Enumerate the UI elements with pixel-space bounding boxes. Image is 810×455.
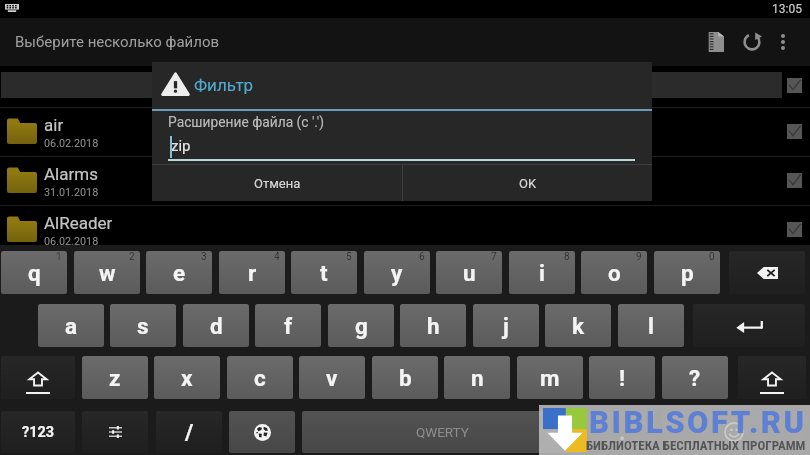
staticText: e bbox=[173, 260, 186, 286]
staticText: BIBLSOFT.RU bbox=[589, 404, 807, 440]
staticText: 06.02.2018 bbox=[44, 137, 99, 150]
staticText: x bbox=[181, 365, 193, 391]
button[interactable]: QWERTY bbox=[302, 411, 582, 453]
button[interactable]: ! bbox=[589, 356, 655, 399]
button[interactable]: 8 bbox=[509, 251, 575, 294]
staticText: 0 bbox=[709, 251, 715, 263]
staticText: Alarms bbox=[44, 164, 98, 184]
button[interactable]: 3 bbox=[146, 251, 212, 294]
staticText: zip bbox=[171, 137, 191, 155]
button[interactable]: Refresh bbox=[734, 24, 770, 60]
staticText: f bbox=[284, 313, 293, 339]
staticText: 1 bbox=[56, 251, 62, 263]
button[interactable]: 6 bbox=[364, 251, 430, 294]
button[interactable]: Android bbox=[0, 254, 810, 286]
button[interactable]: l bbox=[618, 304, 684, 347]
button[interactable]: / bbox=[156, 411, 222, 453]
button[interactable]: d bbox=[183, 304, 249, 347]
button[interactable]: b bbox=[372, 356, 438, 399]
staticText: OK bbox=[519, 176, 537, 191]
button[interactable]: v bbox=[299, 356, 365, 399]
button[interactable]: z bbox=[82, 356, 148, 399]
button[interactable]: Emoji bbox=[662, 411, 805, 453]
button[interactable]: a bbox=[38, 304, 104, 347]
button[interactable]: Отмена bbox=[152, 165, 402, 201]
staticText: v bbox=[326, 365, 338, 391]
staticText: o bbox=[608, 260, 621, 286]
staticText: a bbox=[65, 313, 78, 339]
staticText: 8 bbox=[564, 251, 570, 263]
staticText: u bbox=[463, 260, 476, 286]
button[interactable]: Shift bbox=[738, 356, 806, 399]
staticText: 06.02.2018 bbox=[44, 235, 99, 248]
button[interactable]: 2 bbox=[74, 251, 140, 294]
staticText: 13:05 bbox=[772, 2, 802, 16]
staticText: . bbox=[619, 419, 626, 445]
button[interactable]: 0 bbox=[654, 251, 720, 294]
staticText: l bbox=[648, 313, 654, 339]
staticText: h bbox=[427, 313, 440, 339]
button[interactable]: . bbox=[589, 411, 655, 453]
button[interactable]: Backspace bbox=[729, 251, 805, 294]
staticText: s bbox=[137, 313, 149, 339]
button[interactable]: More options bbox=[768, 27, 798, 57]
button[interactable]: n bbox=[444, 356, 510, 399]
button[interactable]: 9 bbox=[581, 251, 647, 294]
button[interactable]: ? bbox=[662, 356, 728, 399]
staticText: 4 bbox=[274, 251, 280, 263]
staticText: d bbox=[210, 313, 223, 339]
staticText: m bbox=[540, 365, 560, 391]
staticText: ? bbox=[689, 365, 701, 391]
staticText: 3 bbox=[201, 251, 207, 263]
button[interactable]: 5 bbox=[291, 251, 357, 294]
staticText: t bbox=[320, 260, 328, 286]
button[interactable]: x bbox=[154, 356, 220, 399]
button[interactable]: m bbox=[517, 356, 583, 399]
staticText: 2 bbox=[129, 251, 135, 263]
staticText: i bbox=[539, 260, 545, 286]
button[interactable]: Enter bbox=[693, 304, 805, 347]
button[interactable]: c bbox=[227, 356, 293, 399]
button[interactable]: s bbox=[110, 304, 176, 347]
button[interactable]: h bbox=[400, 304, 466, 347]
staticText: ! bbox=[619, 365, 626, 391]
button[interactable]: 4 bbox=[219, 251, 285, 294]
staticText: j bbox=[503, 313, 509, 339]
button[interactable]: j bbox=[473, 304, 539, 347]
staticText: air bbox=[44, 115, 64, 135]
button[interactable]: g bbox=[328, 304, 394, 347]
button[interactable]: air bbox=[0, 107, 810, 156]
staticText: p bbox=[681, 260, 694, 286]
button[interactable]: AlReader bbox=[0, 205, 810, 254]
staticText: r bbox=[248, 260, 257, 286]
staticText: AlReader bbox=[44, 213, 113, 233]
staticText: b bbox=[399, 365, 412, 391]
staticText: БИБЛИОТЕКА БЕСПЛАТНЫХ ПРОГРАММ bbox=[586, 438, 806, 453]
button[interactable]: 1 bbox=[1, 251, 67, 294]
staticText: Расширение файла (с '.') bbox=[168, 114, 325, 130]
staticText: g bbox=[355, 313, 368, 339]
staticText: 5 bbox=[346, 251, 352, 263]
staticText: k bbox=[572, 313, 585, 339]
staticText: y bbox=[391, 260, 403, 286]
button[interactable]: k bbox=[545, 304, 611, 347]
staticText: Отмена bbox=[254, 176, 301, 191]
staticText: 7 bbox=[491, 251, 497, 263]
button[interactable]: Change language bbox=[229, 411, 295, 453]
staticText: 06.02.2018 bbox=[44, 284, 99, 297]
staticText: QWERTY bbox=[416, 424, 469, 440]
button[interactable]: Alarms bbox=[0, 156, 810, 205]
button[interactable] bbox=[1, 72, 782, 98]
staticText: 31.01.2018 bbox=[44, 186, 99, 199]
button[interactable]: Shift bbox=[1, 356, 75, 399]
button[interactable]: OK bbox=[403, 165, 652, 201]
button[interactable]: ?123 bbox=[1, 411, 75, 453]
staticText: / bbox=[185, 419, 194, 445]
button[interactable]: f bbox=[255, 304, 321, 347]
button[interactable]: Settings bbox=[82, 411, 148, 453]
button[interactable]: 7 bbox=[436, 251, 502, 294]
staticText: Android bbox=[44, 262, 104, 282]
button[interactable]: Create archive bbox=[697, 24, 733, 60]
staticText: Фильтр bbox=[194, 75, 254, 95]
staticText: q bbox=[28, 260, 41, 286]
